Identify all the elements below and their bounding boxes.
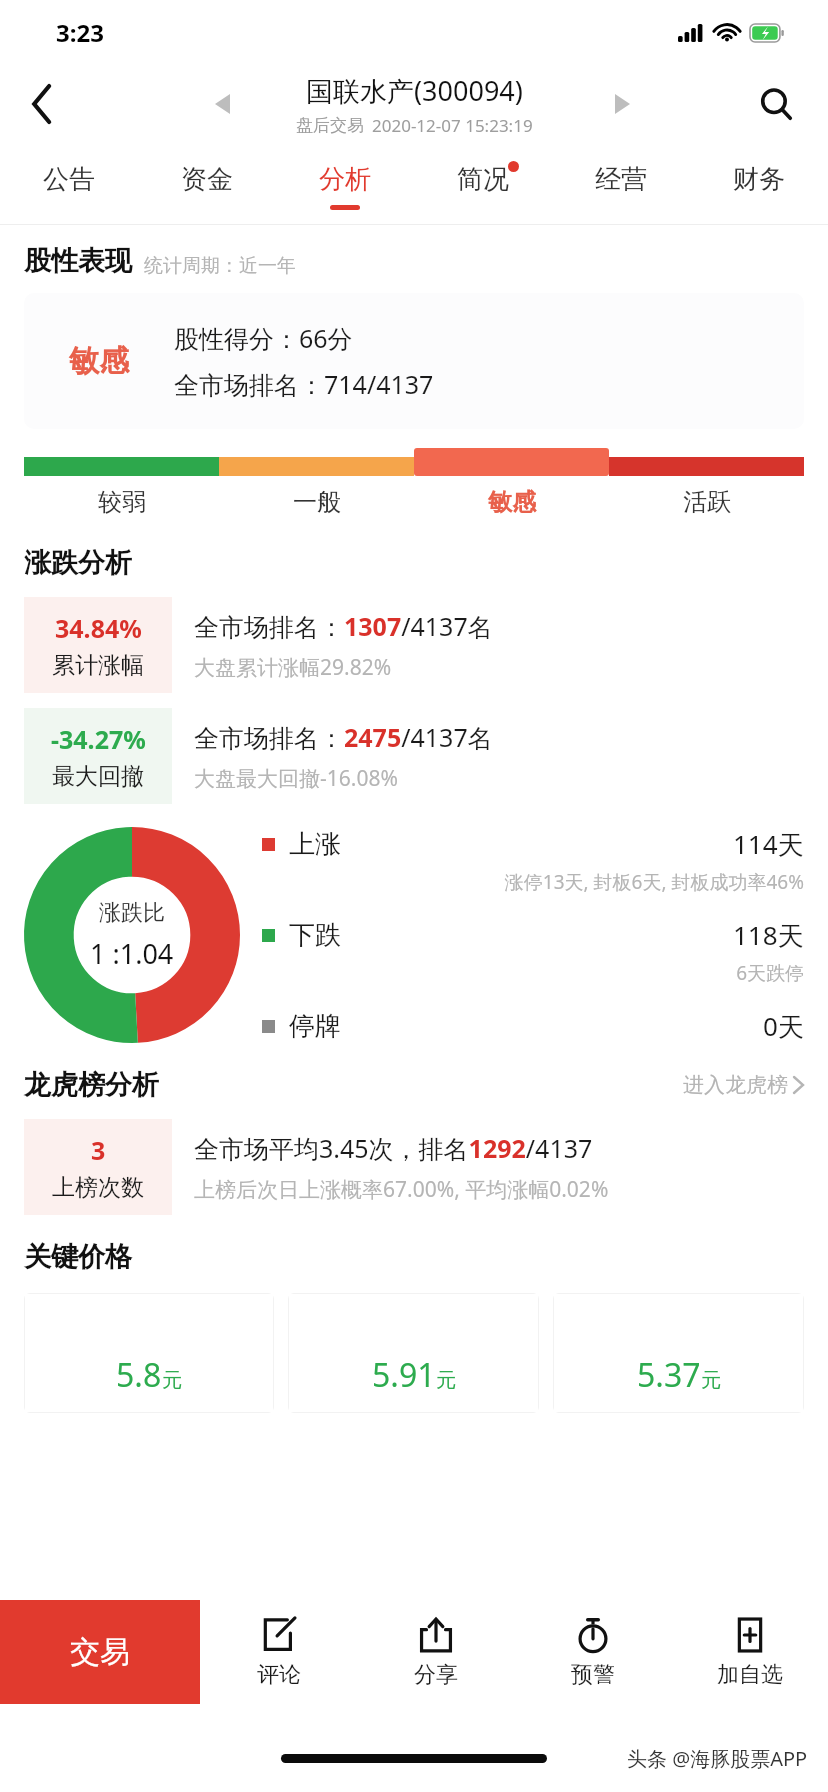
button[interactable]: 评论 [200, 1600, 357, 1704]
button[interactable]: 搜索 [746, 74, 806, 134]
button[interactable]: 公告 [0, 148, 138, 224]
staticText: 全市场平均3.45次，排名1292/4137 [194, 1131, 593, 1165]
staticText: 敏感 [69, 342, 129, 380]
staticText: 最大回撤 [52, 762, 144, 791]
staticText: 5.8 [116, 1353, 162, 1397]
staticText: 下跌 [289, 919, 341, 952]
button[interactable]: 上一只 [200, 82, 244, 126]
staticText: 大盘累计涨幅29.82% [194, 653, 392, 682]
staticText: 2020-12-07 15:23:19 [372, 114, 533, 137]
button[interactable]: 资金 [138, 148, 276, 224]
button[interactable]: 分析 [276, 148, 414, 224]
button[interactable]: 返回 [16, 77, 70, 131]
staticText: 0天 [763, 1008, 804, 1044]
staticText: 加自选 [717, 1661, 783, 1689]
button[interactable]: -34.27% [24, 708, 804, 804]
staticText: 关键价格 [24, 1240, 132, 1274]
button[interactable]: 进入龙虎榜 [683, 1072, 804, 1098]
staticText: 34.84% [55, 611, 142, 645]
staticText: 股性表现 [24, 244, 132, 278]
staticText: 全市场排名：2475/4137名 [194, 720, 493, 754]
staticText: 114天 [733, 826, 804, 862]
staticText: 全市场排名：714/4137 [174, 367, 434, 401]
staticText: 活跃 [683, 487, 731, 517]
staticText: 全市场排名：1307/4137名 [194, 609, 493, 643]
staticText: 3 [91, 1133, 106, 1167]
button[interactable]: 5.8 [24, 1293, 274, 1413]
staticText: 龙虎榜分析 [24, 1068, 159, 1102]
button[interactable]: 简况 [414, 148, 552, 224]
staticText: 分析 [319, 163, 371, 196]
button[interactable]: 34.84% [24, 597, 804, 693]
staticText: 上榜后次日上涨概率67.00%, 平均涨幅0.02% [194, 1175, 609, 1204]
staticText: 经营 [595, 163, 647, 196]
button[interactable]: 分享 [357, 1600, 514, 1704]
staticText: 分享 [414, 1661, 458, 1689]
button[interactable]: 加自选 [671, 1600, 828, 1704]
staticText: 大盘最大回撤-16.08% [194, 764, 398, 793]
staticText: 交易 [70, 1633, 130, 1671]
staticText: 1 :1.04 [90, 935, 174, 972]
staticText: 5.91 [372, 1353, 436, 1397]
staticText: 资金 [181, 163, 233, 196]
staticText: 较弱 [98, 487, 146, 517]
staticText: 盘后交易 [296, 115, 364, 136]
staticText: 评论 [257, 1661, 301, 1689]
staticText: 财务 [733, 163, 785, 196]
staticText: 6天跌停 [262, 960, 804, 986]
staticText: 国联水产(300094) [306, 72, 523, 109]
button[interactable]: 敏感 [24, 293, 804, 429]
button[interactable]: 经营 [552, 148, 690, 224]
button[interactable]: 预警 [514, 1600, 671, 1704]
button[interactable]: 3 [24, 1119, 804, 1215]
button[interactable]: 5.91 [288, 1293, 539, 1413]
staticText: 停牌 [289, 1010, 341, 1043]
staticText: 上榜次数 [52, 1173, 144, 1202]
button[interactable]: 5.37 [553, 1293, 804, 1413]
staticText: 敏感 [488, 487, 536, 517]
staticText: 涨跌比 [99, 899, 165, 927]
staticText: 公告 [43, 163, 95, 196]
staticText: 一般 [293, 487, 341, 517]
staticText: 简况 [457, 163, 509, 196]
button[interactable]: 交易 [0, 1600, 200, 1704]
staticText: -34.27% [51, 722, 146, 756]
staticText: 3:23 [56, 16, 104, 49]
staticText: 进入龙虎榜 [683, 1072, 788, 1098]
staticText: 涨停13天, 封板6天, 封板成功率46% [262, 869, 804, 895]
staticText: 元 [162, 1368, 182, 1393]
staticText: 5.37 [637, 1353, 701, 1397]
staticText: 头条 @海豚股票APP [627, 1745, 808, 1772]
staticText: 元 [436, 1368, 456, 1393]
staticText: 累计涨幅 [52, 651, 144, 680]
staticText: 股性得分：66分 [174, 321, 353, 355]
button[interactable]: 下一只 [600, 82, 644, 126]
staticText: 预警 [571, 1661, 615, 1689]
staticText: 118天 [733, 917, 804, 953]
staticText: 统计周期：近一年 [144, 254, 296, 278]
staticText: 元 [701, 1368, 721, 1393]
staticText: 上涨 [289, 828, 341, 861]
button[interactable]: 财务 [690, 148, 828, 224]
staticText: 涨跌分析 [24, 546, 132, 580]
